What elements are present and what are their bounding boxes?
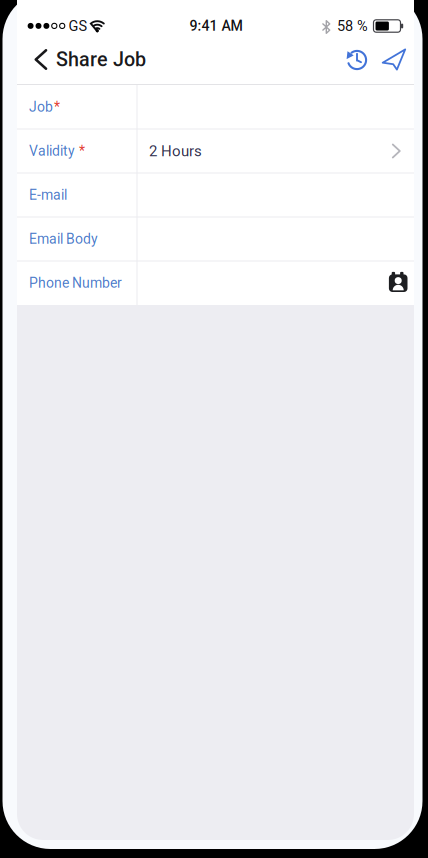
staticText: E-mail — [29, 187, 67, 203]
staticText: Validity — [29, 143, 75, 159]
staticText: GS — [68, 17, 87, 34]
button[interactable]: Back — [30, 45, 52, 73]
button[interactable]: Email Body — [17, 217, 414, 261]
button[interactable]: E-mail — [17, 173, 414, 217]
staticText: * — [79, 143, 85, 159]
button[interactable]: Phone Number — [17, 261, 414, 305]
staticText: Phone Number — [29, 275, 122, 291]
staticText: * — [54, 99, 60, 115]
button[interactable]: Job — [17, 85, 414, 129]
button[interactable]: Validity — [17, 129, 414, 173]
staticText: Email Body — [29, 231, 98, 247]
staticText: 2 Hours — [149, 142, 202, 160]
staticText: 58 % — [337, 17, 368, 34]
button[interactable]: History — [344, 47, 370, 73]
button[interactable]: Choose contact — [388, 270, 408, 294]
staticText: 9:41 AM — [189, 18, 242, 34]
button[interactable]: Send — [380, 47, 408, 71]
staticText: Job — [29, 99, 53, 115]
staticText: Share Job — [56, 48, 146, 71]
